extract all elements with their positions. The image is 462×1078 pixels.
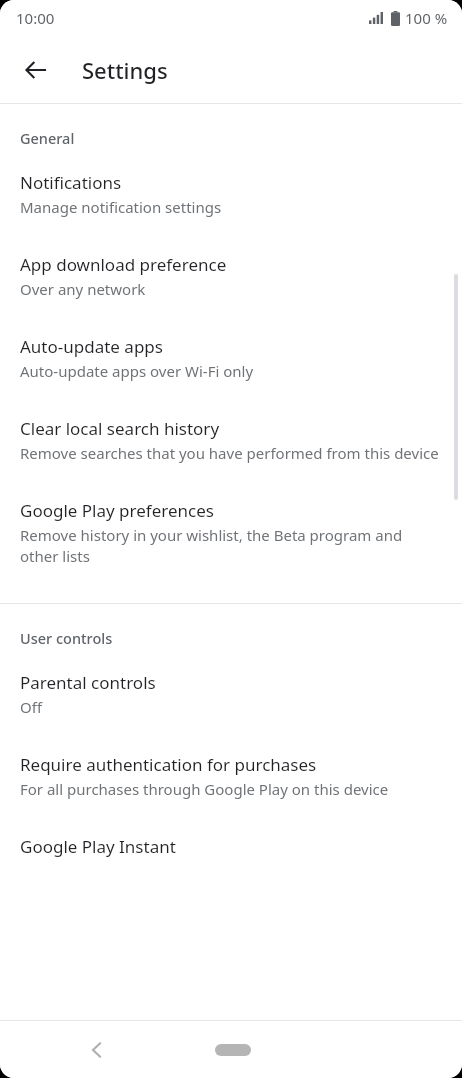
button[interactable]: Parental controls (0, 671, 462, 731)
staticText: Off (20, 697, 43, 717)
staticText: Require authentication for purchases (20, 753, 317, 776)
staticText: Auto-update apps (20, 335, 163, 358)
staticText: For all purchases through Google Play on… (20, 779, 389, 799)
button[interactable]: Notifications (0, 171, 462, 231)
staticText: User controls (20, 628, 113, 648)
button[interactable]: Google Play preferences (0, 477, 462, 581)
staticText: App download preference (20, 253, 227, 276)
staticText: Notifications (20, 171, 122, 194)
button[interactable]: Back (73, 1026, 121, 1074)
staticText: Clear local search history (20, 417, 220, 440)
staticText: 100 % (405, 8, 448, 28)
staticText: Over any network (20, 279, 146, 299)
button[interactable]: App download preference (0, 231, 462, 313)
button[interactable]: Home (210, 1032, 256, 1068)
staticText: Settings (82, 55, 168, 85)
button[interactable]: Back (12, 46, 60, 94)
staticText: Google Play preferences (20, 499, 214, 522)
staticText: Remove history in your wishlist, the Bet… (20, 525, 440, 567)
staticText: Google Play Instant (20, 835, 176, 858)
staticText: Remove searches that you have performed … (20, 443, 439, 463)
button[interactable]: Require authentication for purchases (0, 731, 462, 813)
staticText: 10:00 (16, 8, 55, 28)
staticText: Auto-update apps over Wi-Fi only (20, 361, 254, 381)
button[interactable]: Clear local search history (0, 395, 462, 477)
staticText: Parental controls (20, 671, 156, 694)
staticText: General (20, 128, 75, 148)
button[interactable]: Google Play Instant (0, 813, 462, 858)
button[interactable]: Auto-update apps (0, 313, 462, 395)
staticText: Manage notification settings (20, 197, 222, 217)
